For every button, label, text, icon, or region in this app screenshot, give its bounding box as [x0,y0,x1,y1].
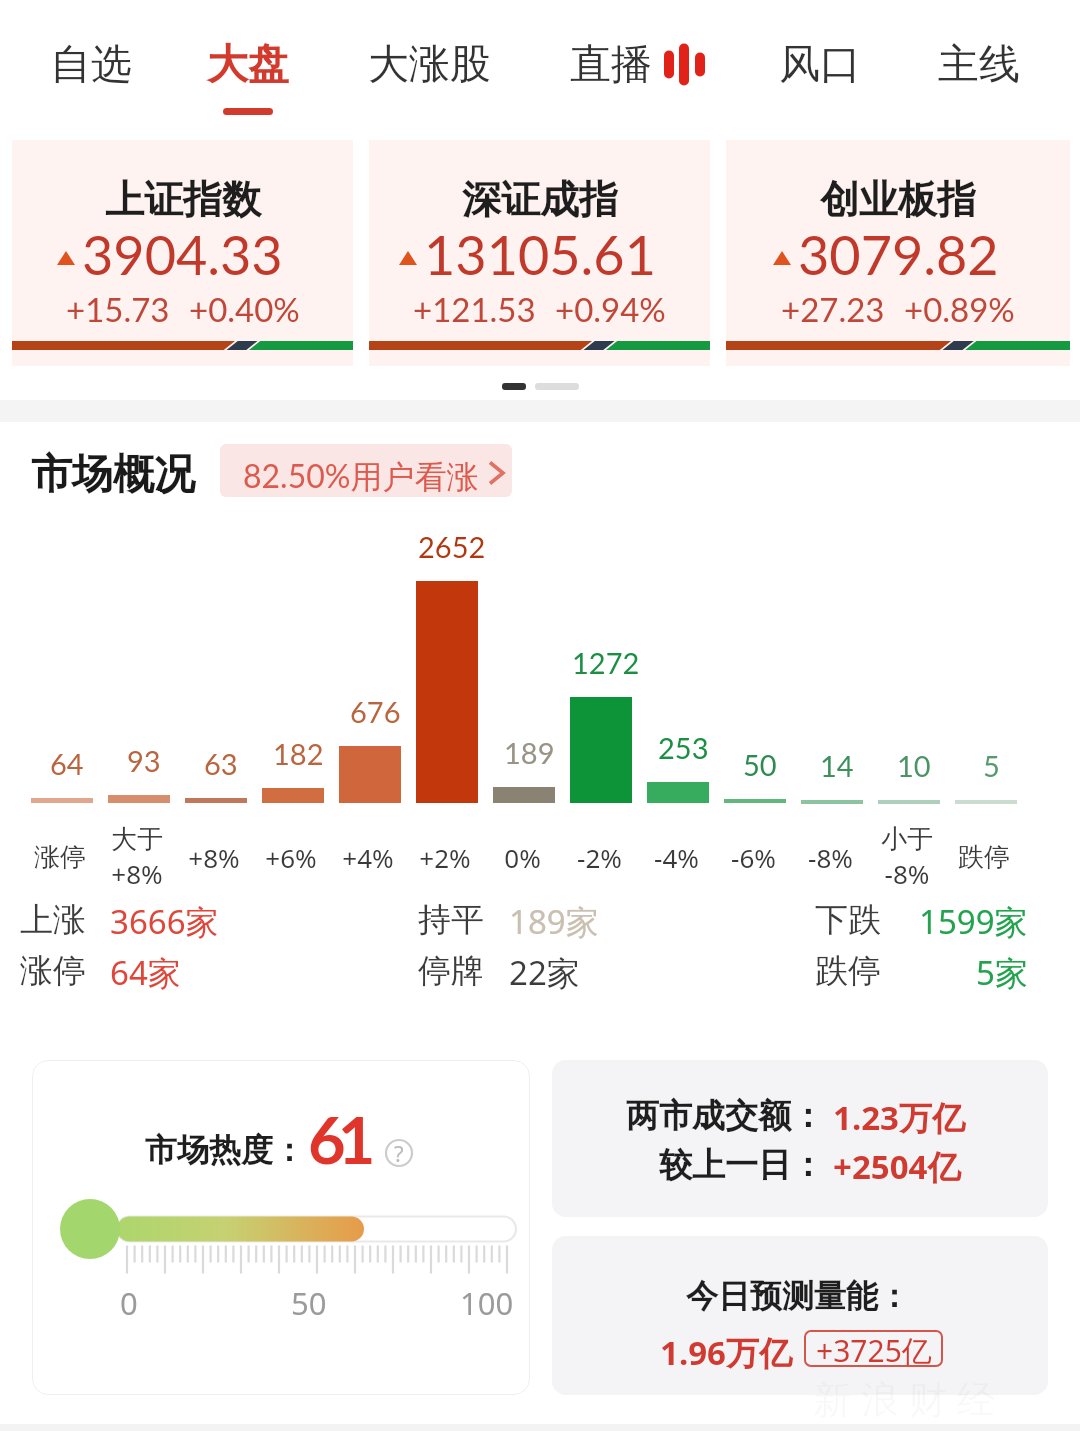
staticText: 3079.82 [798,222,999,287]
staticText: 今日预测量能： [686,1276,910,1316]
staticText: +0.89% [904,289,1015,329]
staticText: 大涨股 [368,39,491,91]
staticText: 主线 [938,39,1020,91]
button[interactable]: 大涨股 [341,0,517,118]
staticText: 2652 [418,529,486,564]
staticText: 1599家 [919,899,1028,944]
staticText: 下跌 [815,899,881,941]
staticText: +2% [419,840,471,875]
staticText: +3725亿 [816,1330,932,1367]
staticText: 13105.61 [424,222,656,287]
staticText: 64 [50,746,84,781]
staticText: 上证指数 [105,175,261,224]
staticText: 3666家 [110,899,219,944]
staticText: 新浪财经 [808,1376,1000,1424]
button[interactable]: 两市成交额： [552,1060,1048,1217]
button[interactable]: 风口 [732,0,908,118]
staticText: 自选 [50,39,132,91]
staticText: 93 [127,743,161,778]
staticText: 10 [897,748,931,783]
staticText: 1.23万亿 [833,1095,965,1140]
staticText: 大盘 [207,39,289,91]
staticText: 22家 [509,950,580,995]
staticText: 较上一日： [659,1144,824,1186]
button[interactable]: 自选 [3,0,179,118]
staticText: -2% [577,840,622,875]
staticText: +2504亿 [833,1144,961,1189]
button[interactable]: 今日预测量能： [552,1236,1048,1395]
staticText: +15.73 [66,289,170,329]
button[interactable]: 主线 [891,0,1067,118]
staticText: 189 [504,735,555,770]
staticText: +0.40% [189,289,300,329]
button[interactable]: 大盘 [160,0,336,118]
button[interactable]: Help [385,1139,413,1167]
staticText: 5 [983,748,1000,783]
staticText: 深证成指 [462,175,618,224]
staticText: 上涨 [20,899,86,941]
staticText: 跌停 [958,841,1010,874]
button[interactable]: 市场热度： [32,1060,530,1395]
button[interactable]: 82.50%用户看涨 [220,444,512,497]
staticText: 1272 [572,645,640,680]
staticText: 跌停 [815,950,881,992]
staticText: +121.53 [413,289,536,329]
staticText: 189家 [509,899,599,944]
staticText: -8% [808,840,853,875]
staticText: 大于 +8% [111,823,163,891]
staticText: 253 [658,730,709,765]
staticText: 100 [460,1282,514,1324]
staticText: ? [394,1138,404,1166]
staticText: 50 [291,1282,327,1324]
staticText: 5家 [976,950,1028,995]
staticText: +0.94% [555,289,666,329]
staticText: 3904.33 [82,222,283,287]
button[interactable]: 创业板指 [726,140,1070,366]
staticText: 直播 [570,39,652,91]
staticText: 0% [504,840,541,875]
staticText: 64家 [110,950,181,995]
staticText: 1.96万亿 [660,1330,792,1375]
staticText: 市场概况 [31,449,195,501]
other: Live [663,44,706,85]
staticText: 182 [273,736,324,771]
staticText: 14 [820,748,854,783]
button[interactable]: 深证成指 [369,140,710,366]
staticText: -6% [731,840,776,875]
staticText: 小于 -8% [881,823,933,891]
staticText: 两市成交额： [626,1095,824,1137]
staticText: +8% [188,840,240,875]
staticText: 市场热度： [145,1130,305,1170]
staticText: 持平 [418,899,484,941]
staticText: 涨停 [34,841,86,874]
staticText: +6% [265,840,317,875]
staticText: 61 [308,1100,368,1178]
staticText: 82.50%用户看涨 [243,456,479,497]
button[interactable]: 上证指数 [12,140,353,366]
staticText: 风口 [779,39,861,91]
staticText: 676 [350,694,401,729]
staticText: +4% [342,840,394,875]
staticText: 涨停 [20,950,86,992]
staticText: 创业板指 [820,175,976,224]
staticText: 50 [743,747,777,782]
staticText: 0 [120,1282,138,1324]
staticText: 63 [204,746,238,781]
button[interactable]: 直播 [523,0,699,118]
staticText: +27.23 [781,289,885,329]
staticText: -4% [654,840,699,875]
staticText: 停牌 [418,950,484,992]
